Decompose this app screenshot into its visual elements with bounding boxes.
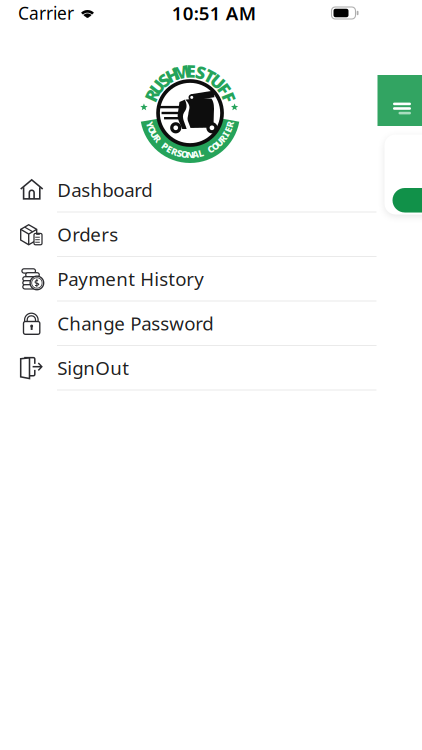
staticText: F	[224, 86, 233, 109]
staticText: U	[211, 70, 224, 93]
staticText: Payment History	[57, 266, 204, 291]
staticText: T	[205, 64, 215, 87]
staticText: S	[159, 69, 169, 92]
staticText: Y	[147, 118, 153, 131]
button[interactable]: Payment History	[0, 257, 376, 301]
staticText: O	[211, 140, 218, 152]
staticText: O	[148, 123, 155, 136]
button[interactable]: SignOut	[0, 346, 376, 390]
staticText: SignOut	[57, 355, 129, 380]
staticText: E	[226, 123, 231, 136]
staticText: H	[166, 63, 179, 86]
staticText: 10:51 AM	[172, 1, 256, 25]
staticText: N	[186, 148, 194, 161]
staticText: R	[146, 84, 158, 107]
staticText: U	[151, 128, 158, 140]
staticText: E	[167, 143, 172, 155]
staticText: Dashboard	[57, 177, 152, 202]
staticText	[160, 136, 162, 149]
staticText: U	[216, 136, 223, 149]
staticText: U	[151, 75, 164, 98]
staticText: O	[181, 148, 188, 160]
staticText: E	[186, 59, 196, 82]
staticText: Carrier	[18, 1, 74, 24]
staticText: I	[224, 128, 228, 140]
staticText: Change Password	[57, 311, 213, 336]
staticText: R	[220, 132, 226, 145]
staticText: L	[198, 147, 203, 159]
button[interactable]: ADD	[392, 188, 422, 212]
staticText: S	[177, 147, 182, 159]
staticText: M	[173, 60, 190, 83]
button[interactable]: Dashboard	[0, 168, 376, 212]
staticText: R	[154, 132, 160, 145]
staticText: F	[220, 77, 229, 100]
staticText: S	[196, 61, 206, 84]
button[interactable]: Orders	[0, 212, 376, 257]
staticText: R	[171, 145, 177, 158]
staticText: C	[208, 143, 214, 155]
button[interactable]: Open menu	[377, 75, 422, 126]
staticText: Orders	[57, 222, 118, 247]
staticText: P	[162, 140, 168, 152]
staticText: A	[192, 148, 199, 160]
button[interactable]: Change Password	[0, 301, 376, 346]
staticText: R	[227, 118, 233, 131]
